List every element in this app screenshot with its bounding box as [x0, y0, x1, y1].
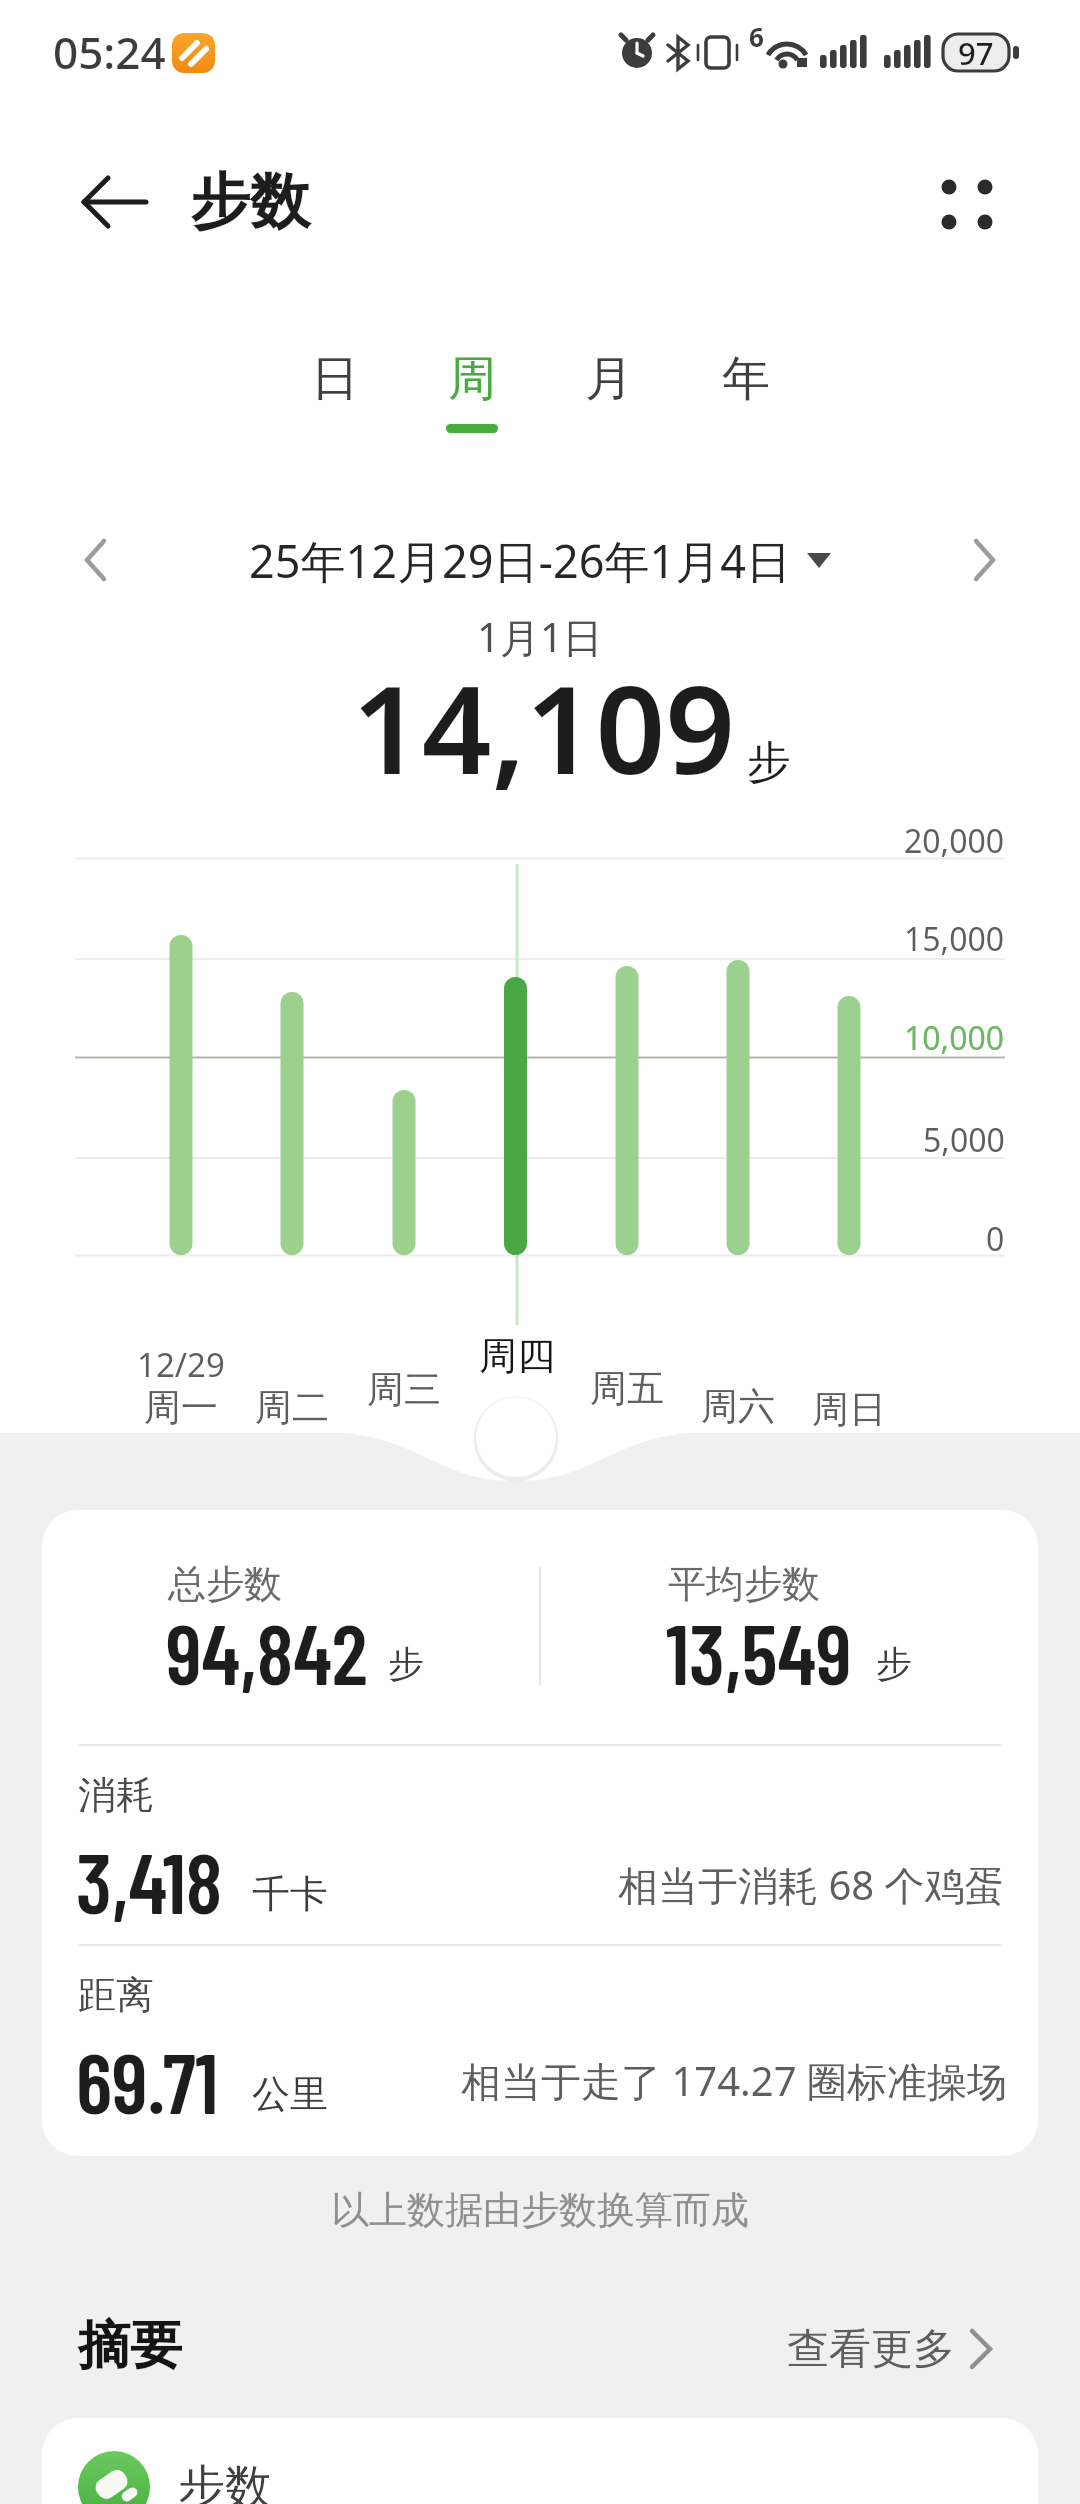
staticText: 5,000 — [923, 1118, 1005, 1162]
staticText: 步数 — [178, 2458, 272, 2504]
staticText: 千卡 — [252, 1870, 328, 1918]
button[interactable]: 年 — [677, 345, 814, 413]
staticText: 周 — [448, 349, 496, 409]
staticText: 以上数据由步数换算而成 — [331, 2186, 749, 2234]
staticText: 步 — [388, 1641, 424, 1686]
button[interactable] — [64, 168, 164, 238]
staticText: 6 — [749, 19, 764, 54]
staticText: 步 — [747, 735, 791, 790]
staticText: 消耗 — [78, 1771, 154, 1819]
staticText: 平均步数 — [668, 1560, 820, 1608]
staticText: 周一 — [144, 1384, 218, 1431]
button[interactable]: 日 — [266, 345, 403, 413]
staticText: 14,109 — [352, 644, 735, 810]
button[interactable] — [760, 2310, 1020, 2386]
staticText: 20,000 — [904, 819, 1005, 863]
staticText: 1月1日 — [477, 609, 603, 664]
staticText: 13,549 — [666, 1601, 852, 1702]
staticText: 相当于走了 174.27 圈标准操场 — [461, 2053, 1007, 2108]
staticText: 查看更多 — [787, 2323, 955, 2376]
button[interactable] — [948, 524, 1020, 596]
button[interactable]: 月 — [540, 345, 677, 413]
staticText: 摘要 — [78, 2313, 182, 2379]
staticText: 日 — [311, 349, 359, 409]
staticText: 05:24 — [53, 22, 166, 82]
button[interactable] — [925, 162, 1009, 246]
staticText: 25年12月29日-26年1月4日 — [249, 530, 791, 591]
staticText: 10,000 — [904, 1016, 1005, 1060]
staticText: 距离 — [78, 1971, 154, 2019]
staticText: 周日 — [812, 1386, 886, 1433]
staticText: 相当于消耗 68 个鸡蛋 — [618, 1857, 1005, 1912]
button[interactable] — [60, 524, 132, 596]
staticText: 69.71 — [76, 2030, 219, 2131]
staticText: 步数 — [190, 164, 310, 240]
staticText: 总步数 — [168, 1560, 282, 1608]
staticText: 0 — [986, 1217, 1005, 1261]
staticText: 周四 — [479, 1332, 555, 1380]
staticText: 15,000 — [904, 917, 1005, 961]
staticText: 94,842 — [166, 1601, 368, 1702]
button[interactable]: 25年12月29日-26年1月4日 — [0, 526, 1080, 594]
staticText: 3,418 — [76, 1830, 223, 1931]
staticText: 周三 — [367, 1366, 441, 1413]
staticText: 年 — [722, 349, 770, 409]
staticText: 周五 — [590, 1365, 664, 1412]
staticText: 周六 — [701, 1383, 775, 1430]
staticText: 步 — [876, 1641, 912, 1686]
staticText: 月 — [585, 349, 633, 409]
staticText: 周二 — [255, 1384, 329, 1431]
staticText: 12/29 — [137, 1342, 225, 1387]
button[interactable] — [42, 2418, 1038, 2504]
staticText: 97 — [958, 32, 994, 74]
staticText: 公里 — [252, 2070, 328, 2118]
button[interactable]: 周 — [403, 345, 540, 413]
